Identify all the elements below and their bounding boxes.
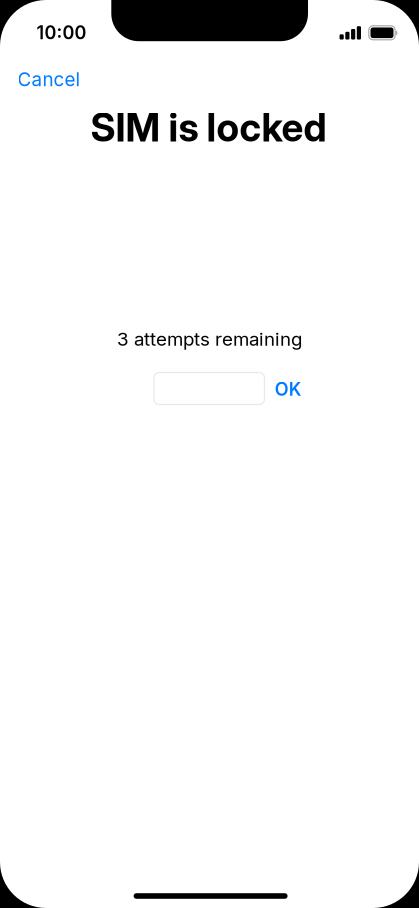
staticText: SIM is locked	[90, 104, 326, 151]
staticText: 3 attempts remaining	[117, 328, 302, 350]
staticText: Cancel	[17, 68, 80, 91]
button[interactable]: OK	[265, 369, 312, 409]
button[interactable]: Cancel	[5, 59, 92, 100]
staticText: OK	[275, 378, 302, 400]
button[interactable]: SIM PIN	[154, 372, 264, 404]
staticText: 10:00	[36, 22, 86, 44]
